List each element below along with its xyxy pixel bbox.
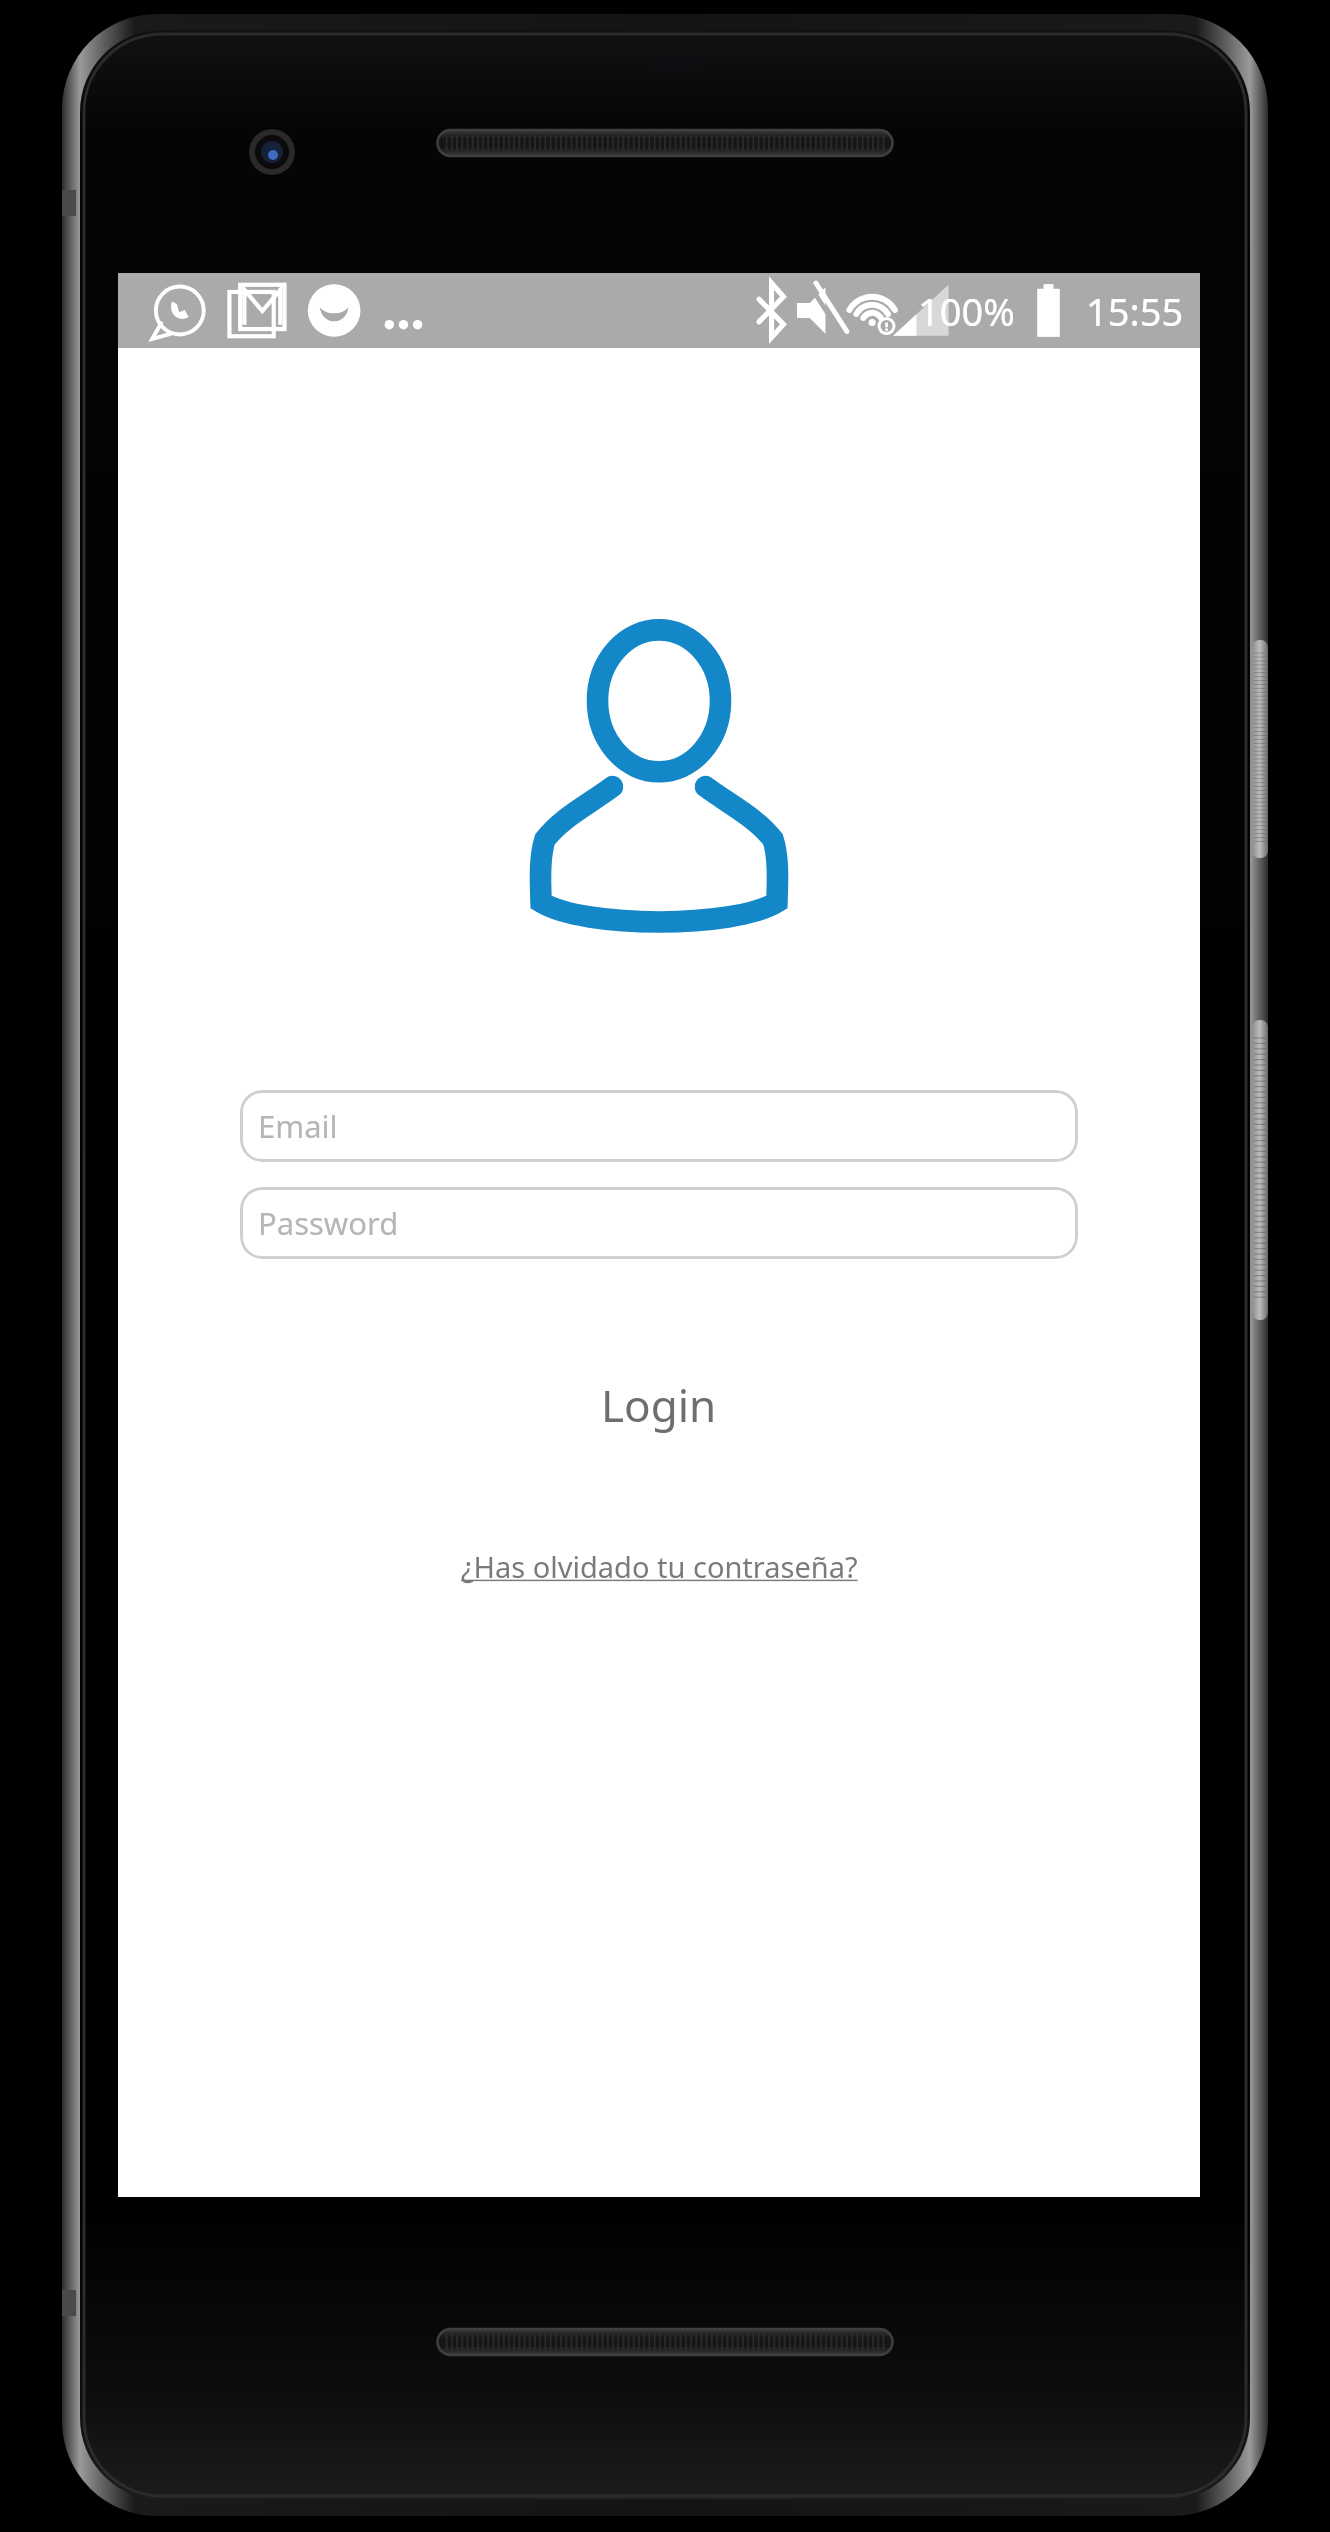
button[interactable]: Login [459, 1370, 859, 1440]
staticText: Email [258, 1105, 338, 1147]
staticText: Login [601, 1375, 717, 1435]
staticText: 100% [918, 285, 1015, 337]
button[interactable]: Email [240, 1090, 1078, 1162]
button[interactable]: ¿Has olvidado tu contraseña? [461, 1540, 858, 1592]
staticText: ¿Has olvidado tu contraseña? [461, 1547, 858, 1586]
button[interactable]: Password [240, 1187, 1078, 1259]
staticText: Password [258, 1202, 399, 1244]
staticText: 15:55 [1086, 285, 1184, 337]
